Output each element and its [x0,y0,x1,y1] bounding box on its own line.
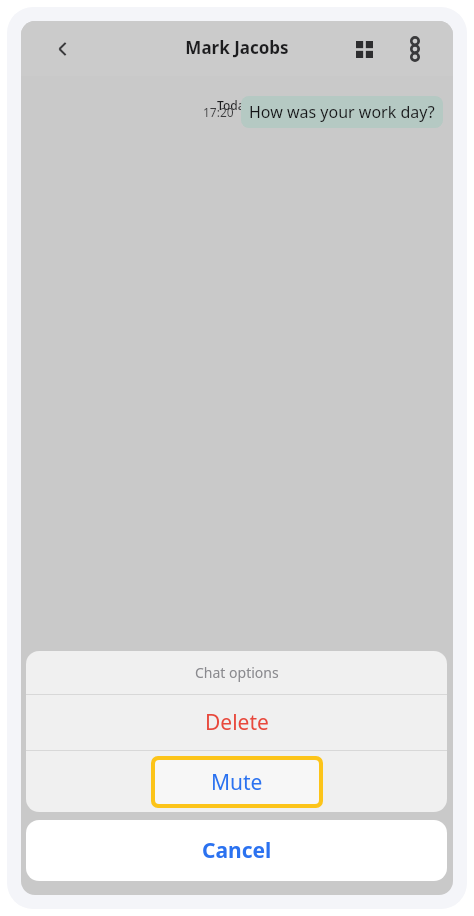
staticText: Delete [205,708,269,737]
staticText: Cancel [202,836,272,865]
staticText: Mute [211,768,263,797]
staticText: 17:20 [203,104,234,120]
button[interactable]: Delete [26,695,447,750]
staticText: Today [217,97,251,113]
staticText: Chat options [195,663,279,682]
button[interactable]: Cancel [26,820,447,881]
button[interactable]: Back [41,27,85,71]
button[interactable]: Mute [155,760,319,804]
staticText: How was your work day? [249,101,435,123]
button[interactable]: How was your work day? [241,96,443,128]
staticText: Mark Jacobs [185,36,289,59]
button[interactable]: Gallery [344,29,384,69]
button[interactable]: More options [395,29,435,69]
